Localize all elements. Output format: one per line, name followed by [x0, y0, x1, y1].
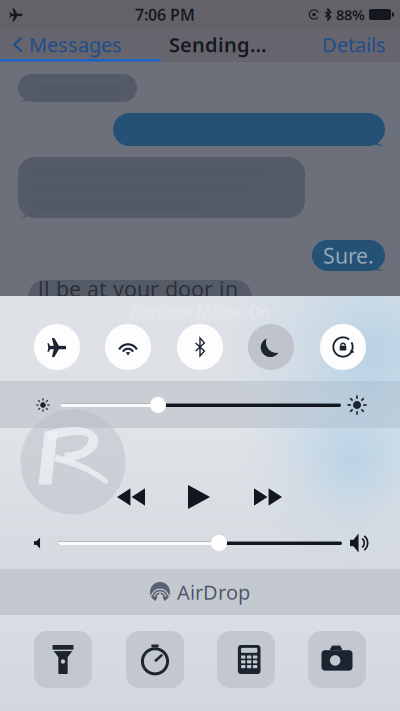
- button[interactable]: Wi-Fi: [105, 324, 151, 370]
- button[interactable]: Do Not Disturb: [248, 324, 294, 370]
- staticText: AirDrop: [177, 579, 250, 605]
- button[interactable]: Calculator: [217, 631, 275, 688]
- button[interactable]: Details: [308, 29, 400, 60]
- staticText: Airplane Mode: On: [129, 301, 270, 323]
- button[interactable]: Bluetooth: [177, 324, 223, 370]
- staticText: Details: [322, 31, 386, 58]
- staticText: Sure.: [323, 241, 374, 270]
- button[interactable]: Play: [176, 473, 224, 521]
- staticText: 88%: [336, 5, 365, 24]
- staticText: Sending…: [169, 31, 267, 58]
- button[interactable]: Previous: [107, 473, 155, 521]
- button[interactable]: Brightness: [0, 381, 400, 428]
- button[interactable]: Rotation Lock: [320, 324, 366, 370]
- button[interactable]: Messages: [0, 29, 128, 60]
- button[interactable]: Camera: [308, 631, 366, 688]
- button[interactable]: Timer: [126, 631, 184, 688]
- button[interactable]: Flashlight: [34, 631, 92, 688]
- button[interactable]: Airplane Mode: [34, 324, 80, 370]
- button[interactable]: Volume: [0, 528, 400, 558]
- staticText: Messages: [29, 31, 122, 58]
- button[interactable]: Next: [244, 473, 292, 521]
- staticText: ll be at your door in 10 mins: [38, 275, 238, 331]
- button[interactable]: AirDrop: [0, 569, 400, 615]
- staticText: 7:06 PM: [135, 4, 195, 25]
